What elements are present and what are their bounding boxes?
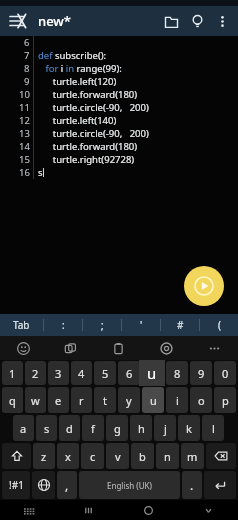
button[interactable]: s	[36, 415, 57, 441]
staticText: 15	[19, 153, 30, 166]
button[interactable]: d	[59, 415, 80, 441]
button[interactable]: More options	[210, 9, 234, 33]
button[interactable]: Settings	[142, 336, 190, 360]
button[interactable]: q	[2, 387, 23, 413]
staticText: 8	[174, 366, 181, 381]
button[interactable]: Clipboard	[94, 336, 142, 360]
button[interactable]: More	[190, 336, 238, 360]
button[interactable]: 3	[48, 361, 69, 385]
staticText: 1	[9, 366, 16, 381]
button[interactable]: Home	[118, 500, 178, 520]
staticText: l	[212, 421, 215, 436]
button[interactable]: Open folder	[158, 8, 184, 34]
staticText: (	[218, 318, 221, 332]
staticText: turtle.forward(180)	[38, 88, 138, 101]
button[interactable]: '	[122, 314, 160, 336]
staticText: u	[150, 393, 157, 408]
button[interactable]: h	[130, 415, 152, 441]
staticText: d	[66, 421, 73, 436]
staticText: 9	[198, 366, 205, 381]
staticText: o	[198, 393, 205, 408]
staticText: 6	[126, 366, 133, 381]
button[interactable]: y	[118, 387, 140, 413]
button[interactable]: (	[200, 314, 238, 336]
button[interactable]: v	[106, 443, 129, 469]
staticText: b	[139, 449, 146, 464]
staticText: ;	[101, 318, 104, 332]
button[interactable]: Tab	[0, 314, 43, 336]
staticText: '	[140, 318, 143, 332]
button[interactable]: e	[48, 387, 69, 413]
button[interactable]: Backspace	[206, 443, 236, 469]
button[interactable]: f	[82, 415, 104, 441]
button[interactable]: 7	[142, 361, 164, 385]
staticText: 0	[222, 366, 229, 381]
staticText: k	[186, 421, 192, 436]
staticText: s	[44, 421, 50, 436]
button[interactable]: Enter	[204, 471, 236, 499]
button[interactable]: o	[190, 387, 212, 413]
staticText: English (UK)	[107, 480, 152, 491]
button[interactable]: 8	[166, 361, 188, 385]
button[interactable]: !#1	[2, 471, 30, 499]
button[interactable]: Hide keyboard	[0, 500, 59, 520]
button[interactable]: 9	[190, 361, 212, 385]
button[interactable]: Shift	[2, 443, 31, 469]
button[interactable]: 4	[71, 361, 92, 385]
staticText: w	[31, 393, 40, 408]
button[interactable]: #	[161, 314, 199, 336]
staticText: turtle.left(120)	[38, 75, 117, 88]
button[interactable]: l	[202, 415, 224, 441]
button[interactable]: .	[182, 471, 202, 499]
button[interactable]: t	[94, 387, 116, 413]
button[interactable]: English (UK)	[79, 471, 180, 499]
button[interactable]: Change language	[32, 471, 55, 499]
button[interactable]: g	[106, 415, 128, 441]
button[interactable]: Tips	[184, 8, 210, 34]
button[interactable]: i	[166, 387, 188, 413]
button[interactable]: n	[156, 443, 179, 469]
button[interactable]: p	[214, 387, 236, 413]
staticText: 13	[19, 127, 30, 140]
staticText: #	[177, 318, 184, 332]
button[interactable]: 5	[94, 361, 116, 385]
staticText: !#1	[9, 478, 24, 492]
staticText: m	[187, 449, 198, 464]
button[interactable]: ,	[57, 471, 77, 499]
staticText: 7	[24, 49, 30, 62]
staticText: i	[176, 393, 179, 408]
button[interactable]: Recents	[59, 500, 118, 520]
button[interactable]: 0	[214, 361, 236, 385]
button[interactable]: j	[154, 415, 176, 441]
button[interactable]: c	[81, 443, 104, 469]
button[interactable]: a	[13, 415, 34, 441]
button[interactable]: k	[178, 415, 200, 441]
button[interactable]: 1	[2, 361, 23, 385]
button[interactable]: :	[44, 314, 82, 336]
button[interactable]: r	[71, 387, 92, 413]
button[interactable]: ;	[83, 314, 121, 336]
button[interactable]: w	[25, 387, 46, 413]
staticText: u	[147, 363, 157, 383]
staticText: 7	[150, 366, 157, 381]
button[interactable]: u	[142, 387, 164, 413]
button[interactable]: 6	[118, 361, 140, 385]
staticText: 5	[102, 366, 109, 381]
button[interactable]: z	[33, 443, 55, 469]
button[interactable]: x	[57, 443, 79, 469]
button[interactable]: Run	[184, 266, 224, 306]
button[interactable]: Back	[178, 500, 238, 520]
button[interactable]: Emoji	[0, 336, 47, 360]
staticText: h	[138, 421, 145, 436]
staticText: 6	[24, 36, 30, 49]
button[interactable]: Stickers	[47, 336, 94, 360]
staticText: q	[9, 393, 16, 408]
staticText: f	[91, 421, 95, 436]
button[interactable]: b	[131, 443, 154, 469]
button[interactable]: 2	[25, 361, 46, 385]
staticText: 14	[19, 140, 30, 153]
staticText: 10	[19, 88, 30, 101]
button[interactable]: Menu	[7, 10, 29, 32]
staticText: v	[115, 449, 121, 464]
button[interactable]: m	[181, 443, 204, 469]
